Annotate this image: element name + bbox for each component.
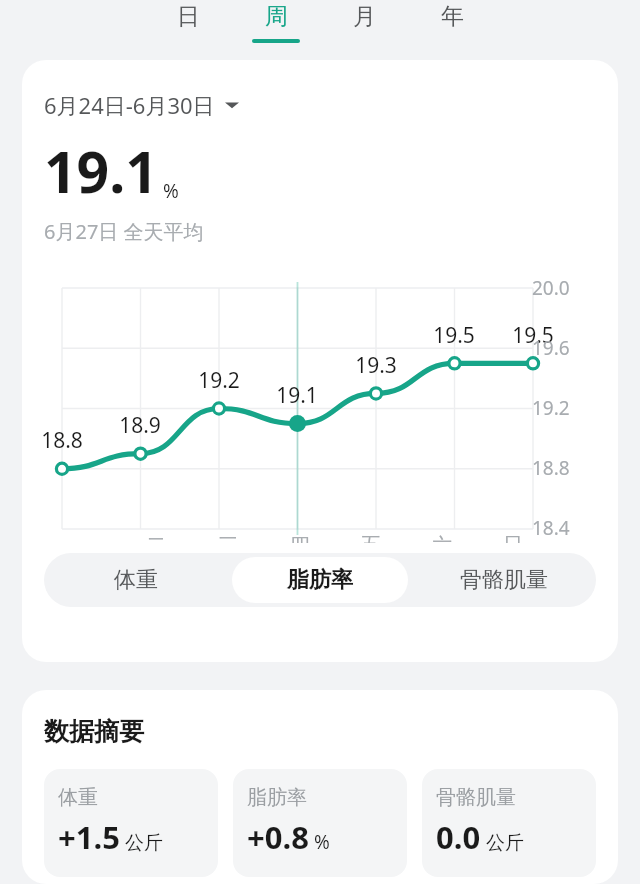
staticText: % <box>314 829 330 855</box>
button[interactable]: 体重 <box>48 557 224 603</box>
staticText: +0.8 <box>247 816 309 858</box>
button[interactable]: 体重 <box>44 769 218 877</box>
staticText: 三 <box>218 533 238 543</box>
staticText: 19.2 <box>198 366 240 395</box>
staticText: 19.5 <box>433 321 475 350</box>
staticText: 日 <box>503 533 523 543</box>
staticText: 20.0 <box>532 275 570 301</box>
staticText: 年 <box>441 2 464 31</box>
staticText: 0.0 <box>436 816 481 858</box>
staticText: % <box>163 178 179 204</box>
staticText: 19.6 <box>532 335 570 361</box>
staticText: 6月24日-6月30日 <box>44 90 215 120</box>
button[interactable]: 脂肪率 <box>232 557 408 603</box>
staticText: 骨骼肌量 <box>460 566 548 594</box>
staticText: 公斤 <box>486 831 524 855</box>
button[interactable]: 6月24日-6月30日 <box>44 90 239 120</box>
button[interactable]: 骨骼肌量 <box>416 557 592 603</box>
staticText: 19.5 <box>512 321 554 350</box>
staticText: 脂肪率 <box>247 785 307 810</box>
button[interactable]: 骨骼肌量 <box>422 769 596 877</box>
staticText: 18.9 <box>119 411 161 440</box>
staticText: 五 <box>361 533 381 543</box>
staticText: 月 <box>353 2 376 31</box>
staticText: 四 <box>290 533 310 543</box>
staticText: 18.4 <box>532 515 570 541</box>
staticText: +1.5 <box>58 816 120 858</box>
staticText: 19.1 <box>276 381 318 410</box>
staticText: 脂肪率 <box>287 566 353 594</box>
staticText: 18.8 <box>41 426 83 455</box>
staticText: 二 <box>146 533 166 543</box>
staticText: 体重 <box>114 566 158 594</box>
staticText: 6月27日 全天平均 <box>44 218 204 245</box>
staticText: 骨骼肌量 <box>436 785 516 810</box>
button[interactable]: 脂肪率 <box>233 769 407 877</box>
staticText: 周 <box>265 2 288 31</box>
staticText: 公斤 <box>125 831 163 855</box>
staticText: 数据摘要 <box>44 716 144 747</box>
button[interactable]: 月 <box>320 0 408 52</box>
button[interactable]: 日 <box>144 0 232 52</box>
button[interactable]: 周 <box>232 0 320 52</box>
staticText: 19.2 <box>532 395 570 421</box>
button[interactable]: 年 <box>408 0 496 52</box>
staticText: 日 <box>177 2 200 31</box>
staticText: 六 <box>432 533 452 543</box>
staticText: 体重 <box>58 785 98 810</box>
staticText: 19.3 <box>355 351 397 380</box>
staticText: 18.8 <box>532 455 570 481</box>
staticText: 19.1 <box>44 132 158 210</box>
